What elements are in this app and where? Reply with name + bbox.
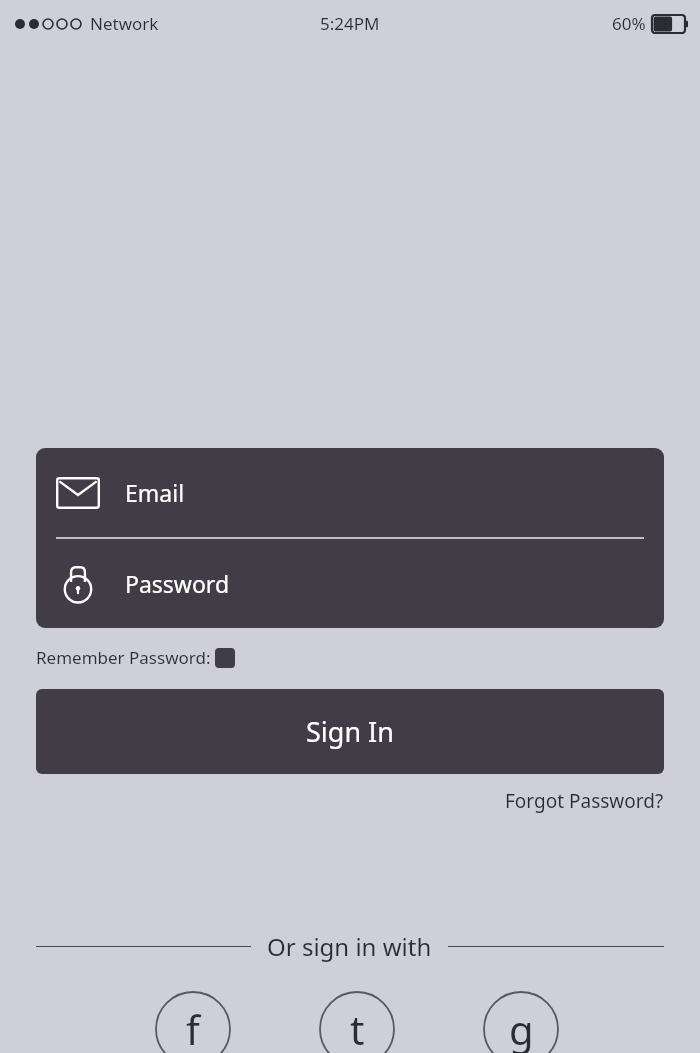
staticText: 60% bbox=[612, 12, 646, 35]
staticText: Password bbox=[125, 568, 230, 599]
staticText: Remember Password: bbox=[36, 646, 211, 669]
staticText: Sign In bbox=[306, 713, 394, 750]
button[interactable]: Sign in with Google bbox=[483, 991, 559, 1053]
button[interactable]: Email bbox=[36, 448, 664, 537]
button[interactable]: Sign in with Facebook bbox=[155, 991, 231, 1053]
staticText: Forgot Password? bbox=[505, 788, 664, 814]
button[interactable]: Sign in with Twitter bbox=[319, 991, 395, 1053]
button[interactable]: Sign In bbox=[36, 689, 664, 774]
staticText: g bbox=[509, 1002, 534, 1053]
staticText: Email bbox=[125, 477, 185, 508]
staticText: 5:24PM bbox=[320, 12, 380, 35]
button[interactable]: Forgot Password? bbox=[505, 788, 664, 814]
button[interactable]: Remember Password: bbox=[36, 646, 235, 669]
staticText: t bbox=[350, 1002, 365, 1053]
button[interactable]: Password bbox=[36, 539, 664, 628]
staticText: Or sign in with bbox=[267, 930, 432, 963]
staticText: Network bbox=[90, 12, 159, 35]
staticText: f bbox=[186, 1002, 200, 1053]
